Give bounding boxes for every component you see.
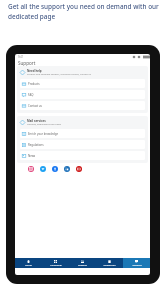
button[interactable]: Support bbox=[123, 258, 150, 268]
button[interactable]: Facebook bbox=[52, 166, 58, 172]
staticText: Training, Regulations and News bbox=[27, 123, 61, 126]
button[interactable]: News bbox=[20, 151, 145, 160]
button[interactable]: Regulations bbox=[20, 140, 145, 149]
staticText: Mail services bbox=[27, 119, 46, 123]
button[interactable]: Instagram bbox=[28, 166, 34, 172]
button[interactable]: Mail services bbox=[20, 119, 145, 126]
button[interactable]: Products bbox=[20, 79, 145, 88]
staticText: Need help bbox=[27, 69, 42, 73]
staticText: News bbox=[28, 154, 36, 158]
button[interactable]: YouTube bbox=[76, 166, 82, 172]
button[interactable]: Twitter bbox=[40, 166, 46, 172]
staticText: Enrich your knowledge bbox=[28, 132, 59, 136]
button[interactable]: Home bbox=[15, 258, 42, 268]
staticText: Regulations bbox=[28, 143, 44, 147]
button[interactable]: Showroom bbox=[96, 258, 123, 268]
staticText: Projects bbox=[78, 263, 87, 266]
button[interactable]: Catalogue bbox=[42, 258, 69, 268]
staticText: Products bbox=[28, 82, 40, 86]
button[interactable]: Projects bbox=[69, 258, 96, 268]
button[interactable]: FAQ bbox=[20, 90, 145, 99]
staticText: FAQ bbox=[28, 93, 34, 97]
staticText: Support bbox=[18, 60, 36, 66]
staticText: Home bbox=[25, 263, 32, 266]
button[interactable]: Contact us bbox=[20, 101, 145, 110]
staticText: 9:41 bbox=[18, 55, 24, 59]
staticText: Showroom bbox=[103, 263, 116, 266]
staticText: Product and software support, customer s… bbox=[27, 73, 92, 76]
button[interactable]: LinkedIn bbox=[64, 166, 70, 172]
staticText: Support bbox=[132, 263, 142, 266]
staticText: Catalogue bbox=[50, 263, 62, 266]
button[interactable]: Need help bbox=[20, 69, 145, 76]
staticText: Get all the support you need on demand w… bbox=[8, 2, 164, 21]
button[interactable]: Enrich your knowledge bbox=[20, 129, 145, 138]
staticText: Contact us bbox=[28, 104, 42, 108]
